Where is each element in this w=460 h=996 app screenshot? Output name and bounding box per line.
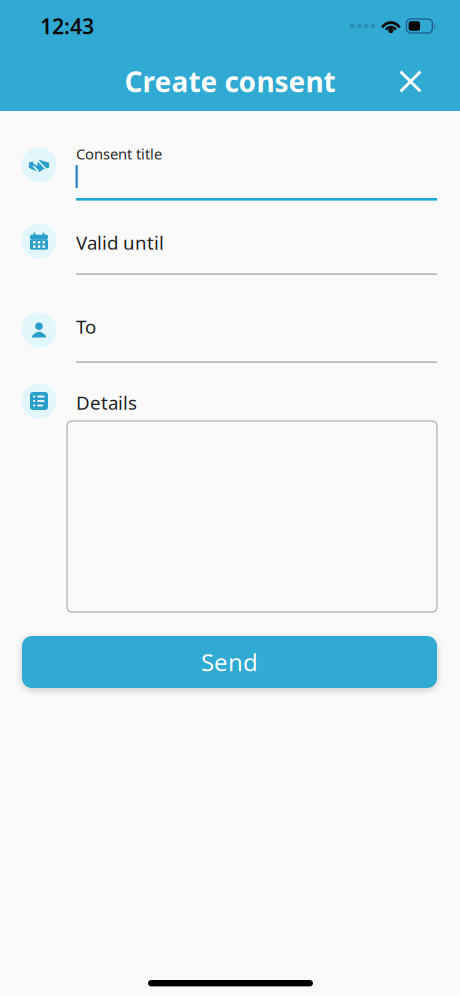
staticText: Send <box>201 646 258 678</box>
staticText: Consent title <box>76 144 162 163</box>
staticText: Create consent <box>124 63 335 100</box>
staticText: 12:43 <box>40 12 94 40</box>
button[interactable]: Close <box>388 59 433 104</box>
staticText: Valid until <box>76 230 164 255</box>
staticText: Details <box>76 390 137 415</box>
button[interactable]: Send <box>22 636 437 688</box>
staticText: To <box>76 314 96 339</box>
